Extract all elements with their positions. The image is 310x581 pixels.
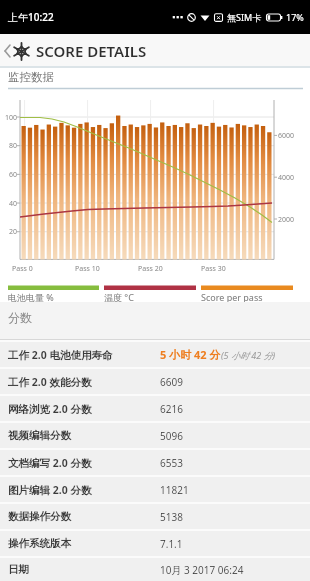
staticText: 视频编辑分数 — [8, 429, 71, 442]
staticText: 11821 — [160, 483, 189, 497]
staticText: 5 小时 42 分 — [160, 347, 221, 362]
staticText: 监控数据 — [8, 70, 54, 84]
staticText: 网络浏览 2.0 分数 — [8, 402, 92, 416]
staticText: 10月 3 2017 06:24 — [160, 563, 244, 577]
button[interactable]: 工作 2.0 效能分数 — [0, 369, 310, 394]
button[interactable]: 网络浏览 2.0 分数 — [0, 396, 310, 421]
staticText: 20 — [0, 227, 17, 237]
button[interactable]: 工作 2.0 电池使用寿命 — [0, 342, 310, 367]
staticText: 温度 °C — [104, 291, 134, 303]
button[interactable]: SCORE DETAILS — [0, 34, 310, 68]
staticText: 40 — [0, 199, 17, 209]
button[interactable]: 图片编辑 2.0 分数 — [0, 477, 310, 502]
button[interactable]: 数据操作分数 — [0, 504, 310, 529]
staticText: 4000 — [278, 173, 295, 183]
staticText: Pass 30 — [201, 264, 226, 274]
staticText: 100 — [0, 113, 17, 123]
staticText: 文档编写 2.0 分数 — [8, 456, 92, 470]
staticText: 日期 — [8, 563, 29, 576]
staticText: 80 — [0, 141, 17, 151]
button[interactable]: 视频编辑分数 — [0, 423, 310, 448]
staticText: 图片编辑 2.0 分数 — [8, 483, 92, 497]
staticText: 工作 2.0 效能分数 — [8, 375, 92, 389]
staticText: 5138 — [160, 510, 183, 524]
staticText: 6216 — [160, 402, 183, 416]
staticText: 分数 — [8, 310, 32, 325]
staticText: 7.1.1 — [160, 537, 183, 551]
staticText: 工作 2.0 电池使用寿命 — [8, 348, 113, 362]
staticText: 6000 — [278, 131, 295, 141]
staticText: Pass 20 — [138, 264, 163, 274]
staticText: Score per pass — [201, 291, 263, 303]
staticText: ⋯ — [172, 11, 183, 24]
staticText: 6553 — [160, 456, 183, 470]
staticText: 数据操作分数 — [8, 510, 71, 523]
staticText: 60 — [0, 170, 17, 180]
staticText: 电池电量 % — [8, 291, 54, 303]
staticText: Pass 10 — [75, 264, 100, 274]
button[interactable]: 日期 — [0, 558, 310, 581]
staticText: Pass 0 — [12, 264, 33, 274]
staticText: 無SIM卡 — [227, 11, 262, 23]
staticText: 6609 — [160, 375, 183, 389]
button[interactable]: 文档编写 2.0 分数 — [0, 450, 310, 475]
staticText: (5 小时 42 分) — [221, 349, 276, 361]
staticText: 操作系统版本 — [8, 537, 71, 550]
button[interactable]: 操作系统版本 — [0, 531, 310, 556]
staticText: SCORE DETAILS — [36, 41, 147, 61]
staticText: 5096 — [160, 429, 183, 443]
staticText: 2000 — [278, 215, 295, 225]
staticText: 17% — [286, 11, 304, 23]
staticText: 上午10:22 — [8, 10, 54, 24]
